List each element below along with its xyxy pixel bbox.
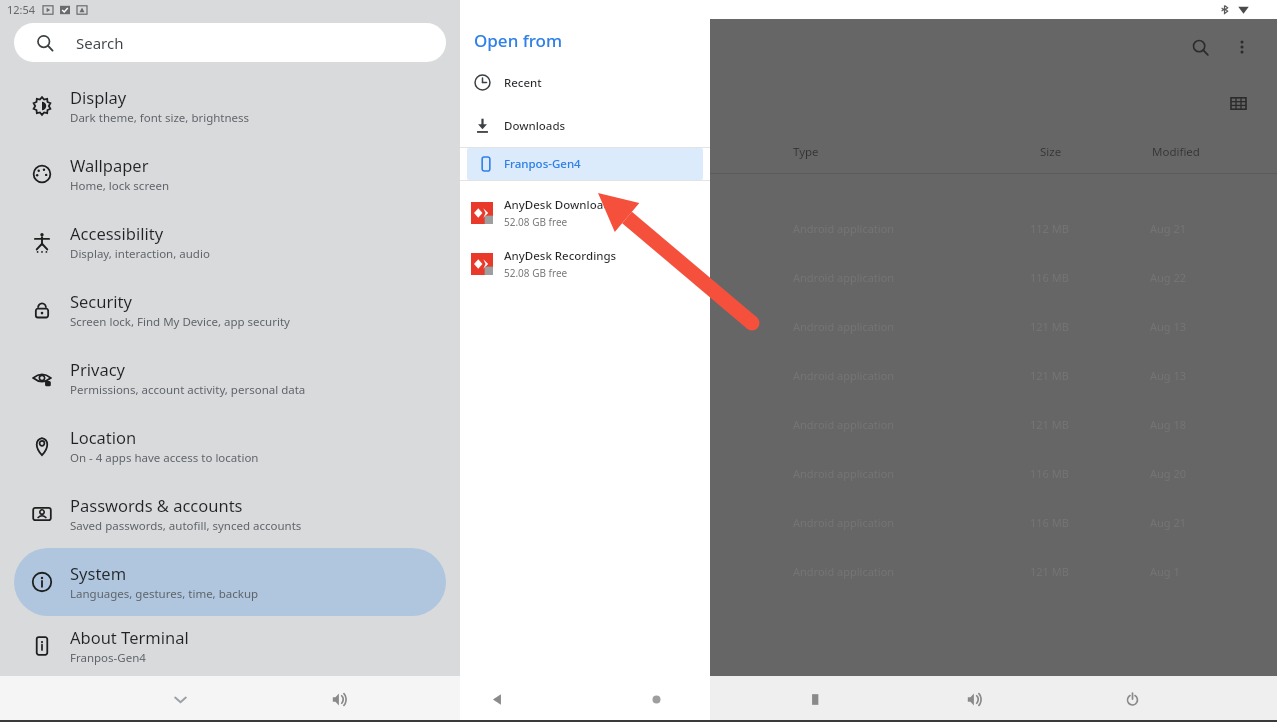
staticText: Android application	[793, 466, 895, 481]
staticText: Aug 21	[1150, 515, 1187, 530]
staticText: Android application	[793, 270, 895, 285]
staticText: 52.08 GB free	[504, 266, 568, 280]
staticText: AnyDesk Downloads	[504, 197, 616, 213]
staticText: Aug 13	[1150, 319, 1187, 334]
staticText: 121 MB	[1030, 319, 1069, 334]
staticText: Type	[793, 144, 819, 160]
button[interactable]: About Terminal	[14, 616, 446, 676]
staticText: Saved passwords, autofill, synced accoun…	[70, 518, 302, 534]
staticText: Dark theme, font size, brightness	[70, 110, 250, 126]
staticText: Android application	[793, 515, 895, 530]
button[interactable]: Passwords & accounts	[14, 480, 446, 548]
staticText: 12:54	[7, 2, 36, 17]
staticText: Recent	[504, 75, 542, 91]
staticText: 121 MB	[1030, 368, 1069, 383]
button[interactable]: Recent	[460, 61, 710, 104]
staticText: 121 MB	[1030, 564, 1069, 579]
button[interactable]: Franpos-Gen4	[467, 148, 703, 180]
staticText: Privacy	[70, 358, 126, 380]
button[interactable]: AnyDesk Recordings	[460, 238, 710, 289]
staticText: Security	[70, 290, 132, 312]
staticText: Size	[1040, 144, 1062, 160]
staticText: On - 4 apps have access to location	[70, 450, 259, 466]
staticText: AnyDesk Recordings	[504, 248, 617, 264]
staticText: Franpos-Gen4	[70, 650, 146, 666]
staticText: Android application	[793, 319, 895, 334]
staticText: System	[70, 562, 127, 584]
staticText: Modified	[1152, 144, 1200, 160]
staticText: Screen lock, Find My Device, app securit…	[70, 314, 290, 330]
button[interactable]: Volume	[318, 679, 358, 719]
staticText: Search	[76, 33, 124, 53]
staticText: Downloads	[504, 118, 566, 134]
staticText: Aug 20	[1150, 466, 1187, 481]
staticText: Aug 1	[1150, 564, 1180, 579]
staticText: About Terminal	[70, 626, 189, 648]
staticText: Display, interaction, audio	[70, 246, 210, 262]
staticText: Android application	[793, 368, 895, 383]
button[interactable]: Search	[1183, 30, 1217, 64]
button[interactable]: Security	[14, 276, 446, 344]
staticText: 116 MB	[1030, 270, 1069, 285]
button[interactable]: Volume	[953, 679, 993, 719]
button[interactable]: Wallpaper	[14, 140, 446, 208]
staticText: Android application	[793, 417, 895, 432]
button[interactable]: Android application	[710, 253, 1277, 302]
staticText: Aug 18	[1150, 417, 1187, 432]
button[interactable]: Grid view	[1223, 88, 1253, 118]
button[interactable]: Accessibility	[14, 208, 446, 276]
staticText: Home, lock screen	[70, 178, 169, 194]
button[interactable]: System	[14, 548, 446, 616]
button[interactable]: Home	[636, 679, 676, 719]
staticText: Wallpaper	[70, 154, 149, 176]
staticText: 116 MB	[1030, 466, 1069, 481]
button[interactable]: Recent apps	[795, 679, 835, 719]
staticText: Languages, gestures, time, backup	[70, 586, 259, 602]
button[interactable]: Back	[477, 679, 517, 719]
staticText: 116 MB	[1030, 515, 1069, 530]
staticText: Display	[70, 86, 127, 108]
button[interactable]: Display	[14, 72, 446, 140]
button[interactable]: Location	[14, 412, 446, 480]
staticText: 121 MB	[1030, 417, 1069, 432]
button[interactable]: Privacy	[14, 344, 446, 412]
staticText: Open from	[474, 29, 563, 52]
button[interactable]: Search	[14, 23, 446, 62]
button[interactable]: More options	[1225, 30, 1259, 64]
staticText: Aug 13	[1150, 368, 1187, 383]
staticText: Android application	[793, 564, 895, 579]
button[interactable]: Android application	[710, 302, 1277, 351]
staticText: Location	[70, 426, 137, 448]
staticText: Permissions, account activity, personal …	[70, 382, 306, 398]
staticText: 52.08 GB free	[504, 215, 568, 229]
button[interactable]: Hide keyboard	[160, 679, 200, 719]
staticText: 112 MB	[1030, 221, 1069, 236]
staticText: Aug 22	[1150, 270, 1187, 285]
button[interactable]: Downloads	[460, 104, 710, 147]
staticText: Android application	[793, 221, 895, 236]
staticText: Aug 21	[1150, 221, 1187, 236]
button[interactable]: AnyDesk Downloads	[460, 187, 710, 238]
button[interactable]: Power	[1112, 679, 1152, 719]
staticText: Passwords & accounts	[70, 494, 243, 516]
staticText: Accessibility	[70, 222, 164, 244]
staticText: Franpos-Gen4	[504, 156, 581, 172]
